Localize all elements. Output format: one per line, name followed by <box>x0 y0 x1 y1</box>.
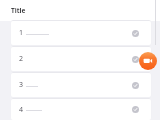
staticText: 3 <box>19 80 24 90</box>
button[interactable]: Record video <box>139 52 157 70</box>
button[interactable]: 4 <box>11 99 151 120</box>
button[interactable]: 3 <box>11 73 151 97</box>
staticText: Title <box>11 6 26 15</box>
button[interactable]: 1 <box>11 21 151 45</box>
staticText: 2 <box>19 54 24 64</box>
staticText: 4 <box>19 105 24 115</box>
staticText: 1 <box>19 28 24 38</box>
button[interactable]: 2 <box>11 47 151 71</box>
